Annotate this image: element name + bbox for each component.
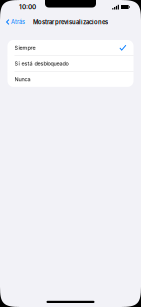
staticText: 10:00 [19, 3, 36, 11]
staticText: Siempre [14, 44, 35, 51]
button[interactable]: Atrás [0, 14, 29, 30]
button[interactable]: Si está desbloqueado [7, 56, 133, 71]
staticText: Nunca [14, 76, 30, 82]
button[interactable]: Nunca [7, 72, 133, 87]
staticText: Atrás [11, 18, 25, 25]
staticText: Mostrar previsualizaciones [33, 18, 108, 26]
button[interactable]: Siempre [7, 40, 133, 55]
staticText: Si está desbloqueado [14, 60, 68, 67]
